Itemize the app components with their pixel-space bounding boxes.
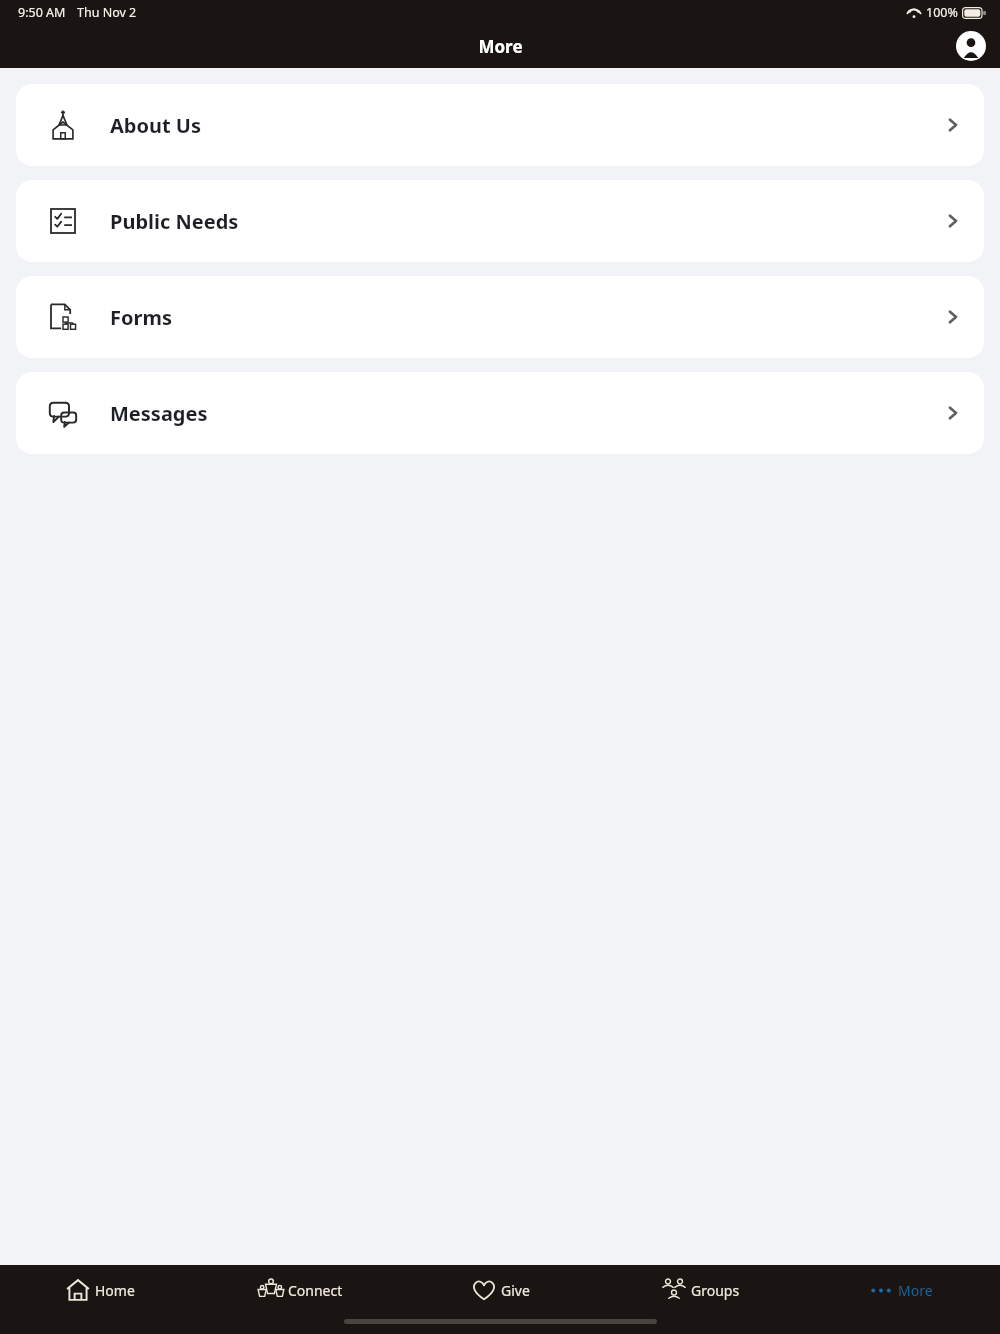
staticText: Thu Nov 2	[77, 4, 137, 21]
staticText: More	[478, 35, 523, 58]
button[interactable]: Public Needs	[16, 180, 984, 262]
staticText: More	[898, 1281, 933, 1300]
staticText: Connect	[288, 1281, 343, 1300]
button[interactable]: Home	[0, 1265, 200, 1315]
staticText: 9:50 AM	[18, 4, 66, 21]
staticText: About Us	[110, 112, 202, 139]
staticText: Groups	[691, 1281, 740, 1300]
staticText: Forms	[110, 304, 172, 331]
button[interactable]: About Us	[16, 84, 984, 166]
button[interactable]: Messages	[16, 372, 984, 454]
staticText: 100%	[926, 4, 958, 21]
staticText: Home	[95, 1281, 135, 1300]
staticText: Public Needs	[110, 208, 239, 235]
button[interactable]: Profile	[956, 31, 986, 61]
button[interactable]: Connect	[200, 1265, 400, 1315]
button[interactable]: Forms	[16, 276, 984, 358]
button[interactable]: Give	[400, 1265, 600, 1315]
button[interactable]: More	[800, 1265, 1000, 1315]
staticText: Give	[501, 1281, 530, 1300]
button[interactable]: Groups	[600, 1265, 800, 1315]
staticText: Messages	[110, 400, 208, 427]
